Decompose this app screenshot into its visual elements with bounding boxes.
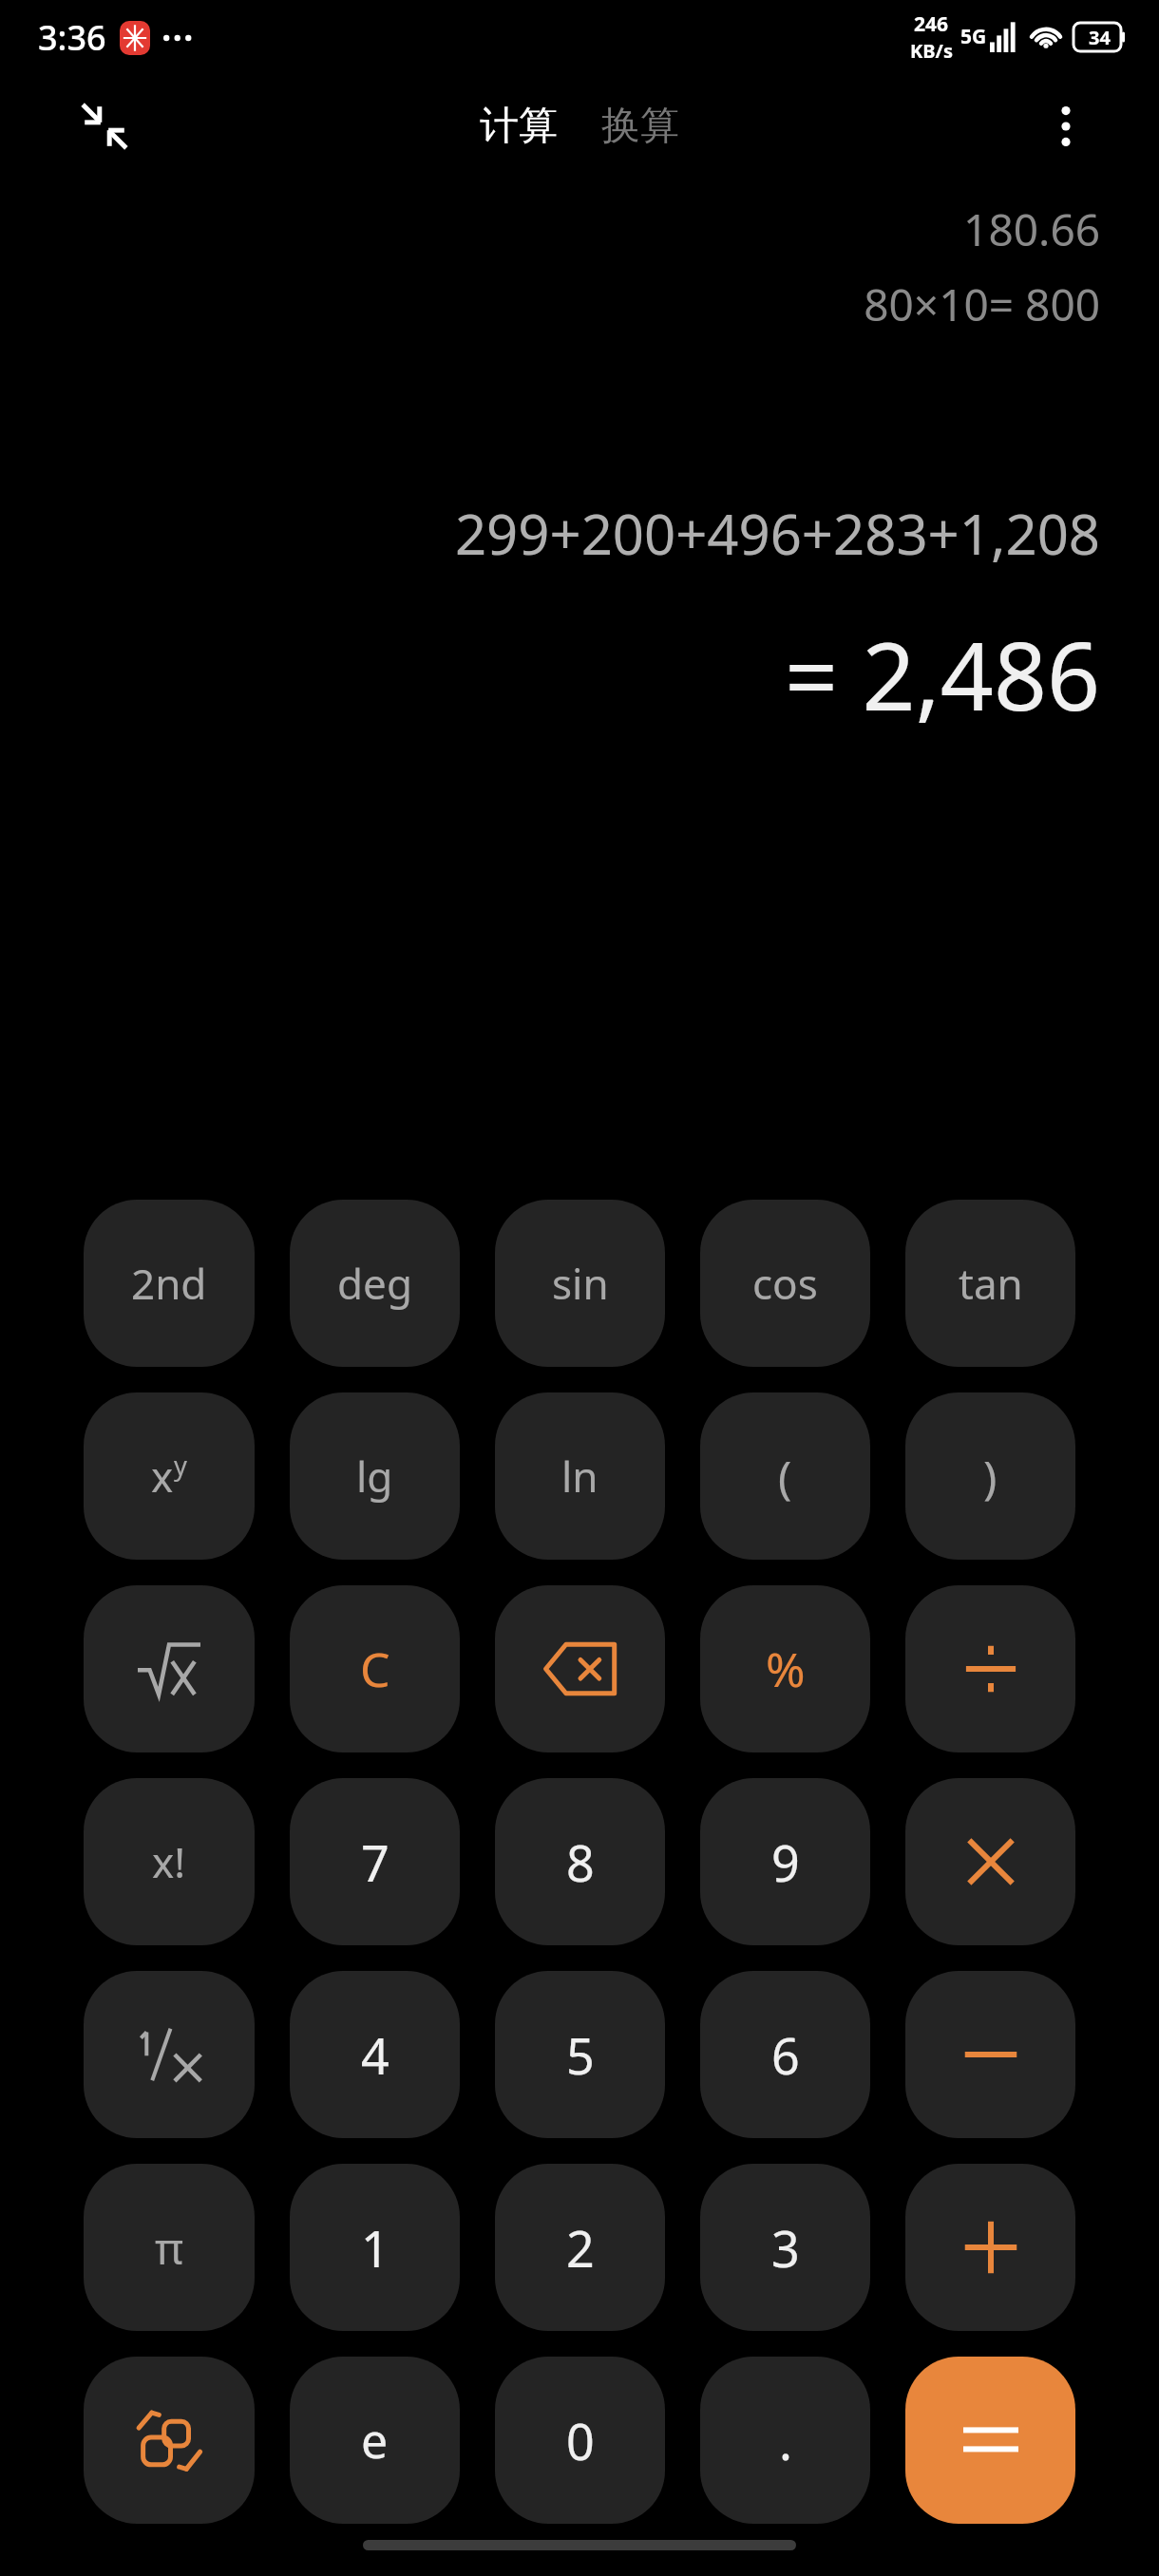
button[interactable]: Plus	[905, 2164, 1075, 2331]
staticText: y	[174, 1448, 187, 1483]
button[interactable]: ln	[495, 1392, 665, 1560]
staticText: = 2,486	[784, 611, 1100, 737]
button[interactable]: 4	[290, 1971, 460, 2138]
staticText: 34	[1089, 25, 1111, 50]
staticText: e	[361, 2408, 389, 2472]
staticText: 1	[361, 2214, 389, 2282]
staticText: 246	[914, 10, 949, 38]
staticText: π	[155, 2218, 184, 2278]
button[interactable]: Minus	[905, 1971, 1075, 2138]
button[interactable]: Reciprocal	[84, 1971, 255, 2138]
staticText: 8	[566, 1828, 595, 1896]
button[interactable]: (	[700, 1392, 870, 1560]
button[interactable]: Collapse	[68, 90, 141, 162]
button[interactable]: Random	[84, 2357, 255, 2524]
button[interactable]: 9	[700, 1778, 870, 1945]
button[interactable]: 0	[495, 2357, 665, 2524]
staticText: cos	[752, 1255, 818, 1312]
button[interactable]: π	[84, 2164, 255, 2331]
button[interactable]: Square root	[84, 1585, 255, 1752]
staticText: KB/s	[910, 38, 953, 64]
button[interactable]: tan	[905, 1200, 1075, 1367]
staticText: 5	[566, 2021, 595, 2089]
button[interactable]: 计算	[470, 96, 567, 157]
button[interactable]: )	[905, 1392, 1075, 1560]
staticText: 9	[771, 1828, 800, 1896]
staticText: 2nd	[131, 1255, 207, 1312]
staticText: ln	[561, 1448, 598, 1505]
button[interactable]: 6	[700, 1971, 870, 2138]
button[interactable]: 换算	[592, 96, 689, 157]
staticText: %	[766, 1637, 806, 1701]
staticText: x!	[152, 1833, 186, 1890]
staticText: 换算	[601, 102, 679, 151]
staticText: .	[779, 2407, 792, 2474]
button[interactable]: e	[290, 2357, 460, 2524]
staticText: C	[360, 1637, 390, 1701]
staticText: 2	[566, 2214, 595, 2282]
button[interactable]: lg	[290, 1392, 460, 1560]
button[interactable]: 8	[495, 1778, 665, 1945]
staticText: x	[151, 1448, 174, 1505]
button[interactable]: 7	[290, 1778, 460, 1945]
button[interactable]: 5	[495, 1971, 665, 2138]
button[interactable]: 1	[290, 2164, 460, 2331]
button[interactable]: x	[84, 1392, 255, 1560]
button[interactable]: sin	[495, 1200, 665, 1367]
staticText: 299+200+496+283+1,208	[454, 496, 1100, 571]
staticText: 7	[361, 1828, 389, 1896]
button[interactable]: x!	[84, 1778, 255, 1945]
button[interactable]: Equals	[905, 2357, 1075, 2524]
staticText: deg	[337, 1255, 412, 1312]
button[interactable]: 2	[495, 2164, 665, 2331]
staticText: tan	[959, 1255, 1023, 1312]
staticText: 5G	[960, 23, 987, 50]
staticText: 0	[566, 2407, 595, 2474]
button[interactable]: C	[290, 1585, 460, 1752]
staticText: 4	[361, 2021, 389, 2089]
button[interactable]: %	[700, 1585, 870, 1752]
button[interactable]: More options	[1032, 92, 1100, 161]
staticText: 3	[771, 2214, 800, 2282]
button[interactable]: Divide	[905, 1585, 1075, 1752]
staticText: 6	[771, 2021, 800, 2089]
staticText: 180.66	[963, 199, 1100, 259]
staticText: 80×10= 800	[864, 275, 1100, 334]
staticText: sin	[552, 1255, 609, 1312]
button[interactable]: .	[700, 2357, 870, 2524]
button[interactable]: 3	[700, 2164, 870, 2331]
staticText: 计算	[480, 102, 558, 151]
button[interactable]: deg	[290, 1200, 460, 1367]
staticText: )	[983, 1446, 997, 1507]
staticText: 3:36	[38, 14, 106, 61]
button[interactable]: cos	[700, 1200, 870, 1367]
button[interactable]: Multiply	[905, 1778, 1075, 1945]
staticText: lg	[356, 1448, 393, 1505]
button[interactable]: Backspace	[495, 1585, 665, 1752]
button[interactable]: 2nd	[84, 1200, 255, 1367]
staticText: (	[778, 1446, 792, 1507]
